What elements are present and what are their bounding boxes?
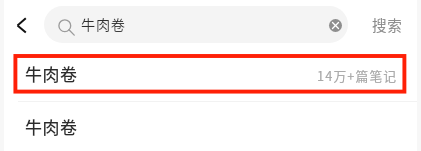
button[interactable]: 牛肉卷 [0,102,421,151]
staticText: 牛肉卷 [25,61,78,86]
button[interactable]: Back [7,11,35,39]
button[interactable]: 牛肉卷 [0,50,421,101]
staticText: 14万+篇笔记 [317,66,398,85]
button[interactable]: 搜索 [364,6,410,43]
button[interactable]: Clear search [322,12,348,38]
button[interactable]: 牛肉卷 [44,6,348,43]
staticText: 搜索 [372,14,403,35]
staticText: 牛肉卷 [81,14,126,35]
staticText: 牛肉卷 [25,114,78,139]
